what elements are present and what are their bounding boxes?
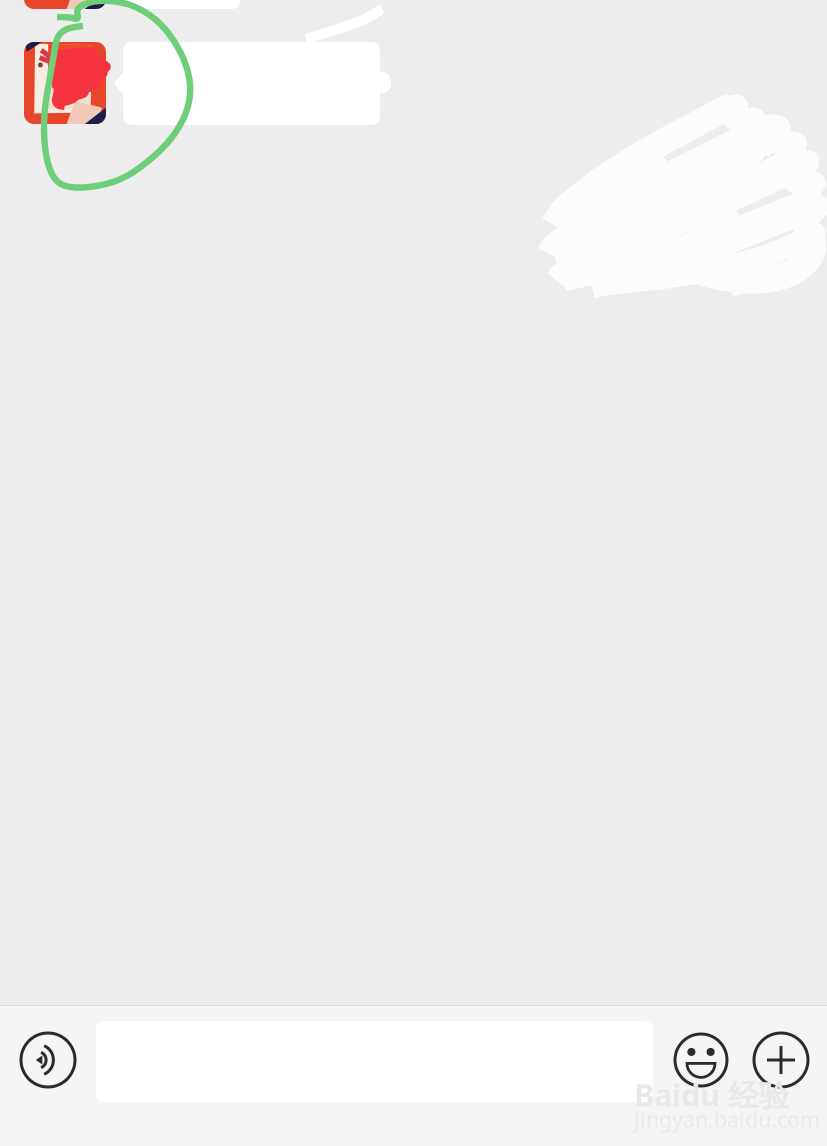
staticText: jingyan.baidu.com: [634, 1105, 820, 1133]
button[interactable]: Contact avatar: [24, 0, 106, 9]
staticText: Baidu 经验: [634, 1074, 790, 1115]
button[interactable]: Received message: [114, 0, 240, 9]
button[interactable]: Emoji: [675, 1034, 727, 1086]
button[interactable]: Received message: [114, 42, 380, 125]
button[interactable]: Hold to talk: [21, 1033, 75, 1087]
button[interactable]: Contact avatar: [24, 42, 106, 124]
button[interactable]: More options: [754, 1033, 808, 1087]
